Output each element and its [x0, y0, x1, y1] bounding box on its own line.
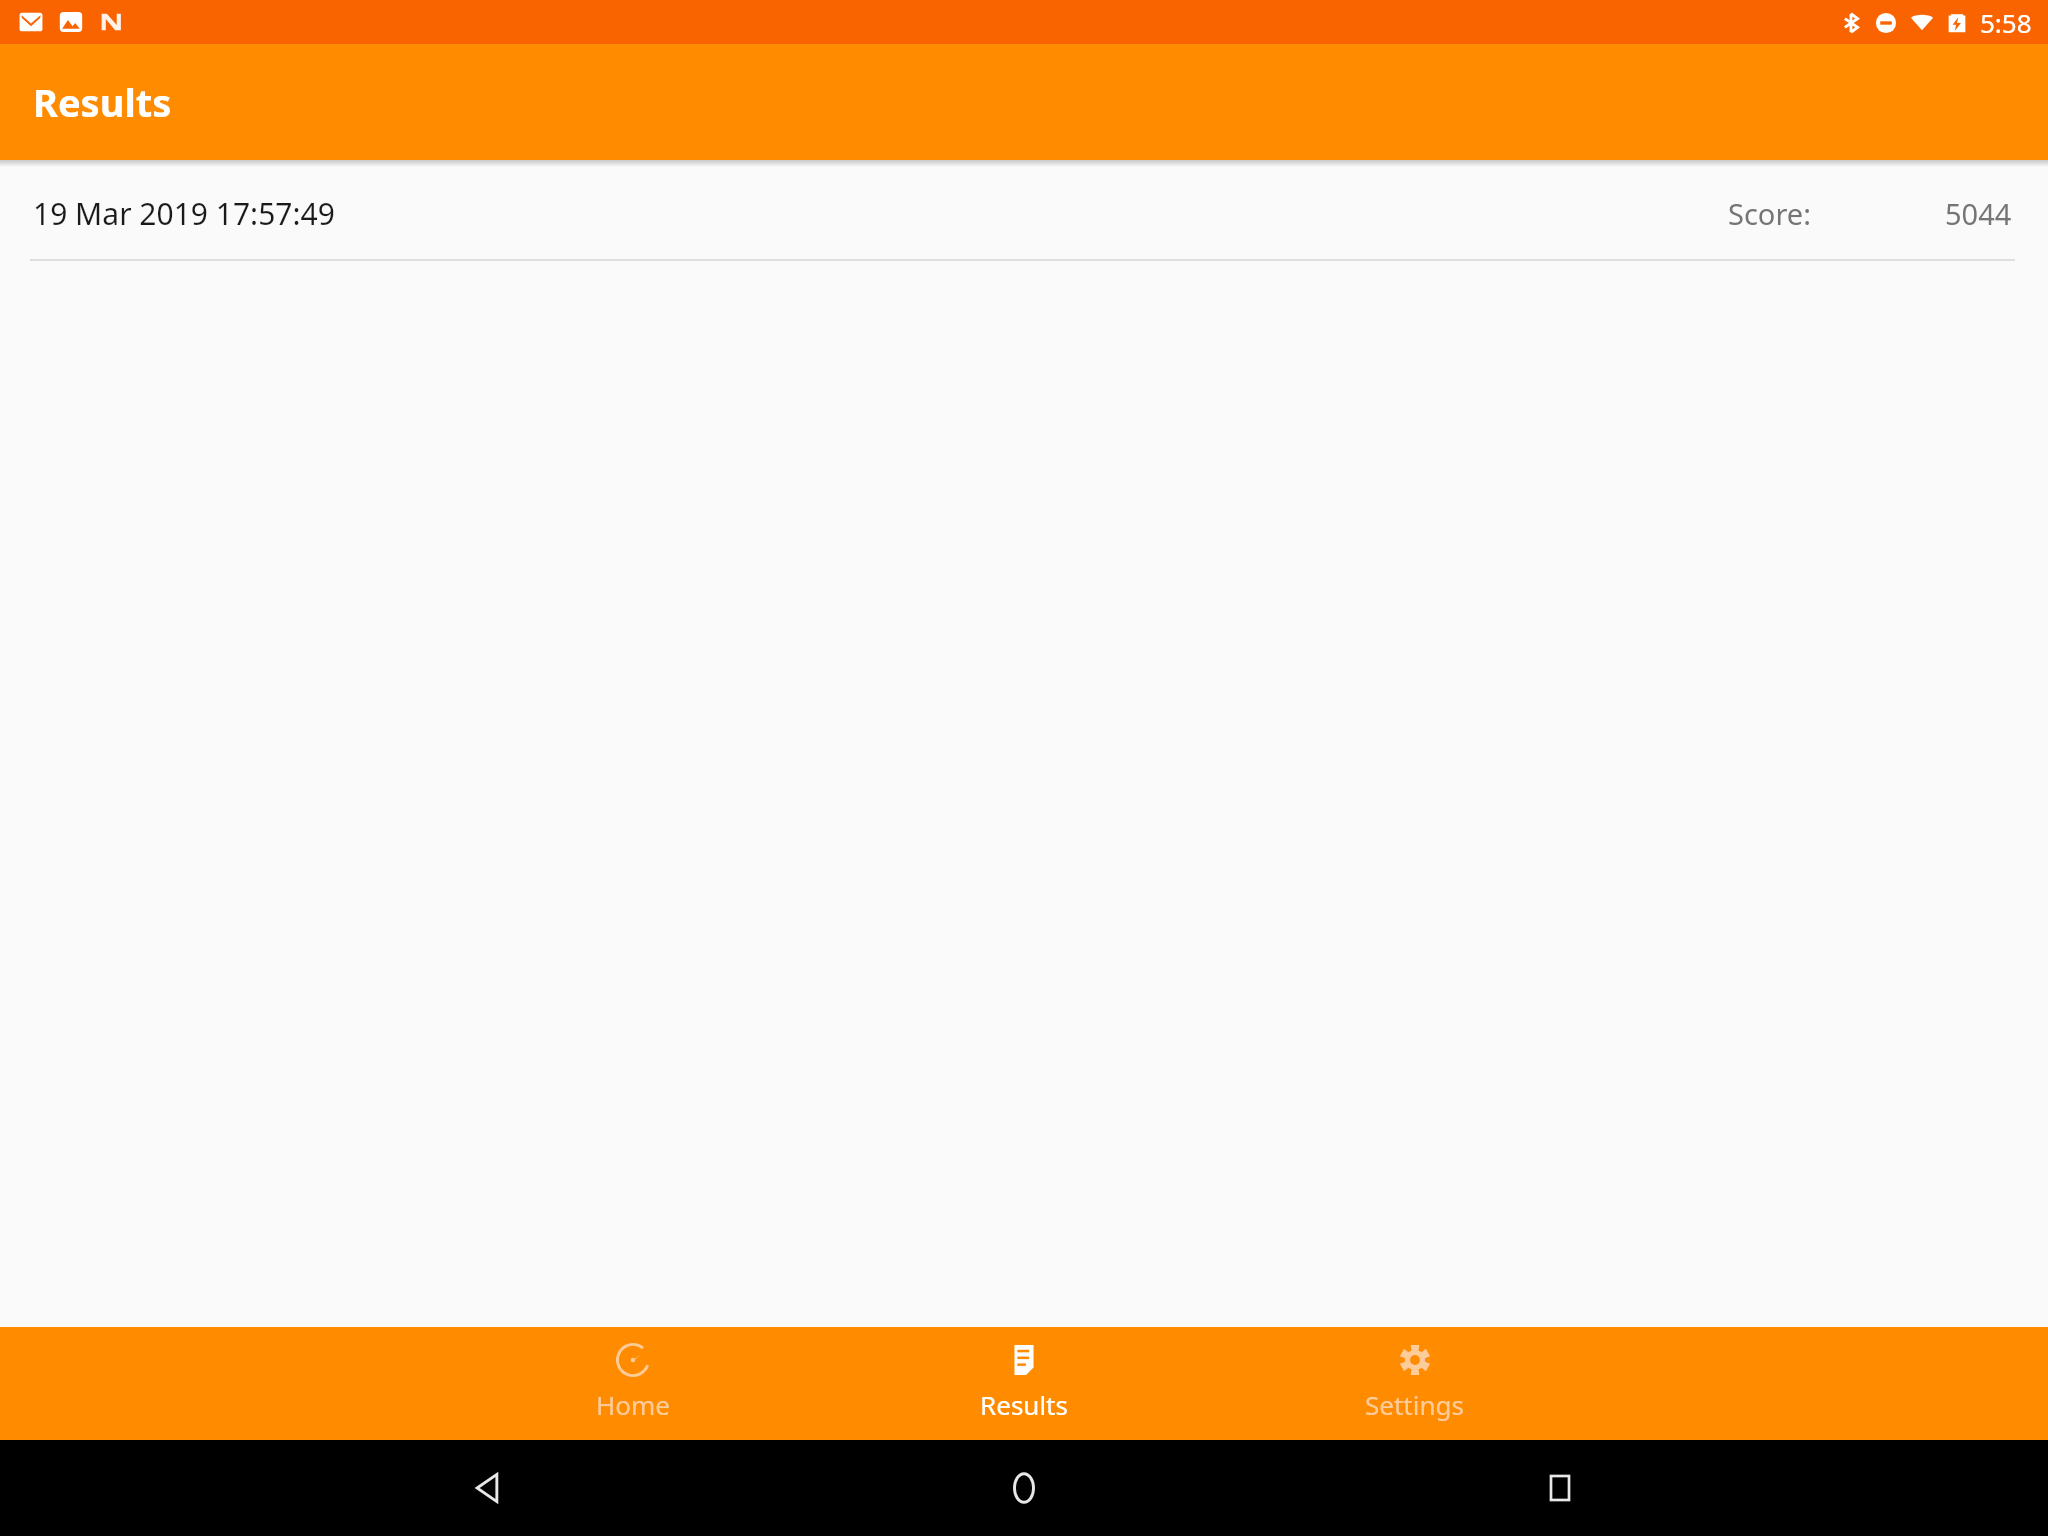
staticText: Settings — [1365, 1387, 1464, 1422]
button[interactable]: Results — [828, 1327, 1219, 1440]
button[interactable]: Home — [437, 1327, 828, 1440]
staticText: 5:58 — [1980, 5, 2032, 40]
button[interactable]: Settings — [1219, 1327, 1610, 1440]
staticText: Results — [980, 1387, 1068, 1422]
button[interactable]: Recent apps — [1512, 1440, 1608, 1536]
staticText: Home — [596, 1387, 670, 1422]
staticText: Results — [33, 76, 172, 128]
staticText: 19 Mar 2019 17:57:49 — [33, 193, 335, 234]
button[interactable]: Home — [976, 1440, 1072, 1536]
button[interactable]: 19 Mar 2019 17:57:49 — [0, 167, 2048, 261]
staticText: 5044 — [1945, 194, 2012, 233]
staticText: Score: — [1728, 194, 1811, 233]
button[interactable]: Back — [440, 1440, 536, 1536]
